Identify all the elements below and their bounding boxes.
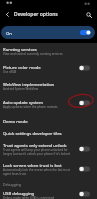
staticText: Automatically lock the screen when the l…: [3, 168, 77, 175]
button[interactable]: Picture color mode: [0, 61, 97, 78]
staticText: On: [6, 30, 12, 36]
button[interactable]: WebView implementation: [0, 78, 97, 96]
staticText: Use sRGB: [3, 70, 17, 74]
button[interactable]: On: [1, 26, 95, 39]
staticText: Developer options: [14, 11, 58, 18]
staticText: USB debugging: [3, 190, 35, 196]
staticText: Lock screen when trust is lost: [3, 162, 62, 168]
button[interactable]: Quick settings developer tiles: [0, 127, 97, 139]
button[interactable]: Running services: [0, 43, 97, 61]
staticText: Quick settings developer tiles: [3, 130, 62, 136]
staticText: Demo mode: [3, 118, 28, 124]
button[interactable]: Toggle: [79, 191, 90, 197]
staticText: Trust agents will keep your phone unlock…: [3, 148, 77, 155]
staticText: Picture color mode: [3, 64, 41, 70]
button[interactable]: Auto update system: [0, 96, 97, 115]
staticText: View and control currently running servi…: [3, 52, 63, 56]
button[interactable]: Toggle: [79, 166, 90, 172]
button[interactable]: Toggle: [79, 146, 90, 152]
button[interactable]: Back: [0, 8, 14, 21]
staticText: Android System WebView: [3, 87, 39, 91]
button[interactable]: Toggle: [79, 65, 90, 71]
button[interactable]: Lock screen when trust is lost: [0, 159, 97, 178]
staticText: WebView implementation: [3, 81, 55, 87]
staticText: Debugging: [3, 182, 21, 187]
button[interactable]: Search: [81, 8, 97, 21]
staticText: Auto update system: [3, 99, 43, 105]
button[interactable]: USB debugging: [0, 187, 97, 199]
staticText: Debug mode when USB is connected: [3, 196, 54, 199]
button[interactable]: Toggle: [79, 100, 90, 106]
staticText: Running services: [3, 46, 37, 52]
staticText: Apply updates when the phone restarts: [3, 105, 58, 109]
button[interactable]: Demo mode: [0, 115, 97, 127]
staticText: Trust agents only extend unlock: [3, 142, 67, 148]
button[interactable]: Trust agents only extend unlock: [0, 139, 97, 159]
